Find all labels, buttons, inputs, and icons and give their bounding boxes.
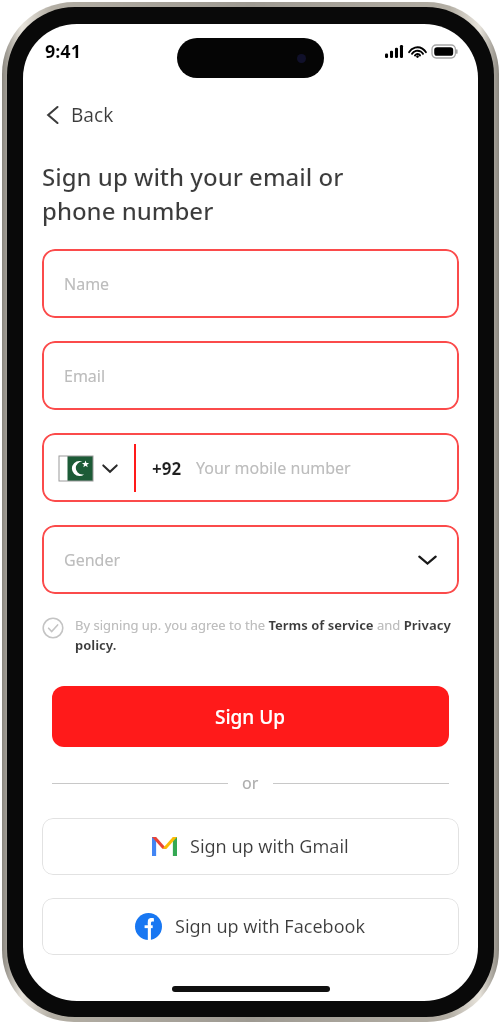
staticText: or [242,772,259,794]
button[interactable]: Email [42,341,459,410]
staticText: 9:41 [45,39,81,64]
staticText: Sign up with Facebook [175,914,366,939]
button[interactable]: Back [41,96,118,134]
staticText: Name [64,273,110,295]
staticText: Gender [64,549,121,571]
button[interactable]: Sign up with Gmail [42,818,459,875]
button[interactable]: +92 [42,433,459,502]
staticText: Sign up with Gmail [190,834,349,859]
button[interactable]: Gender [42,525,459,594]
staticText: +92 [152,457,182,480]
button[interactable]: Sign Up [52,686,449,747]
staticText: Sign Up [215,704,286,730]
staticText: By signing up. you agree to the Terms of… [75,616,459,654]
button[interactable]: By signing up. you agree to the Terms of… [42,616,459,654]
staticText: Sign up with your email or phone number [42,160,344,227]
staticText: Back [71,102,114,128]
staticText: Your mobile number [196,457,351,479]
button[interactable]: Name [42,249,459,318]
button[interactable]: Sign up with Facebook [42,898,459,955]
staticText: Email [64,365,106,387]
